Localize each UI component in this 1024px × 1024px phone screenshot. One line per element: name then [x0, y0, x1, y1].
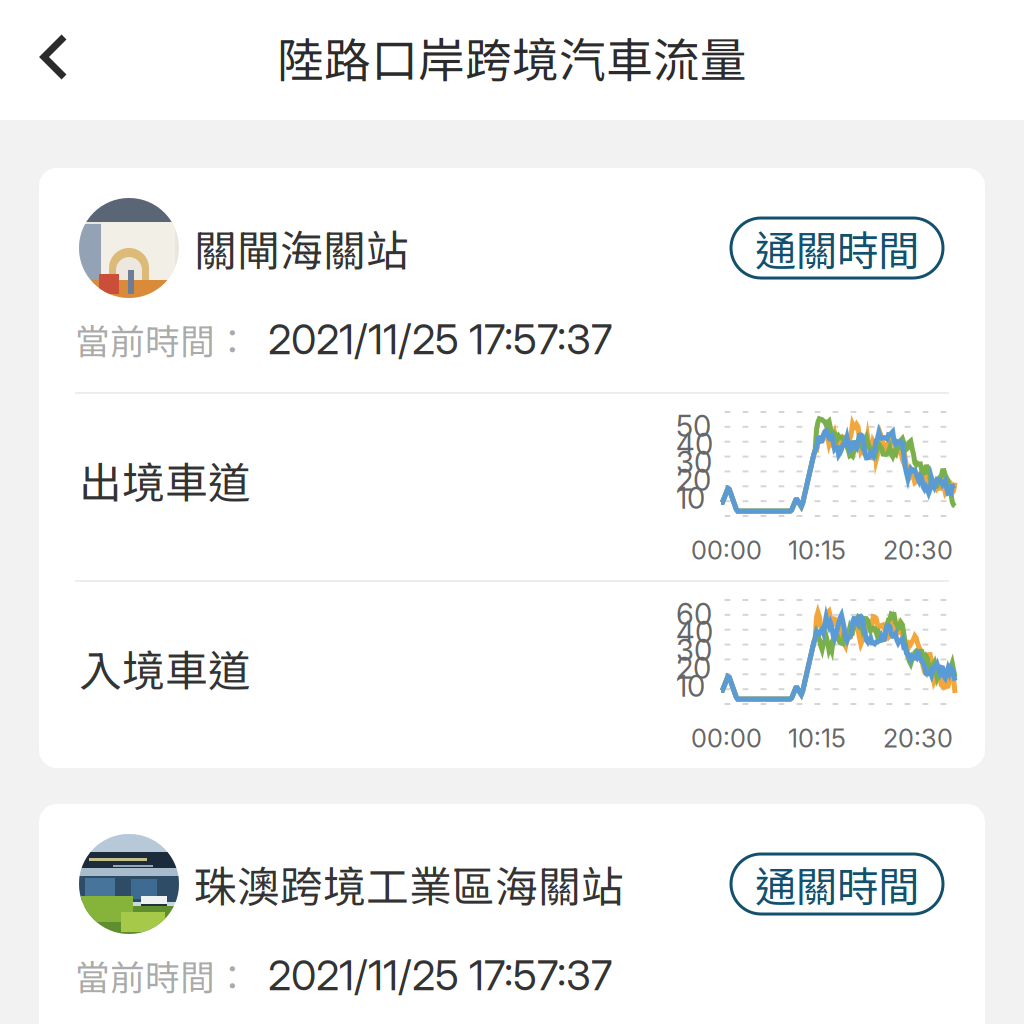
staticText: 2021/11/25 17:57:37 — [268, 314, 612, 364]
staticText: 陸路口岸跨境汽車流量 — [277, 23, 747, 91]
staticText: 10:15 — [788, 723, 846, 754]
staticText: 30 — [676, 632, 712, 668]
staticText: 10:15 — [788, 535, 846, 566]
staticText: 珠澳跨境工業區海關站 — [194, 853, 624, 915]
staticText: 40 — [676, 426, 713, 462]
staticText: 10 — [676, 480, 705, 516]
staticText: 入境車道 — [79, 637, 251, 699]
staticText: 10 — [676, 668, 705, 704]
button[interactable]: 通關時間 — [731, 218, 943, 278]
staticText: 20 — [676, 650, 711, 686]
button[interactable]: 出境車道 — [39, 394, 985, 580]
button[interactable]: 入境車道 — [39, 582, 985, 768]
staticText: 出境車道 — [79, 449, 251, 511]
staticText: 20:30 — [883, 535, 953, 566]
staticText: 關閘海關站 — [194, 217, 409, 279]
staticText: 00:00 — [691, 535, 762, 566]
staticText: 30 — [676, 444, 712, 480]
staticText: 60 — [676, 596, 712, 632]
button[interactable]: 通關時間 — [731, 854, 943, 914]
staticText: 50 — [676, 408, 711, 444]
staticText: 00:00 — [691, 723, 762, 754]
staticText: 當前時間： — [75, 314, 250, 364]
staticText: 2021/11/25 17:57:37 — [268, 950, 612, 1000]
staticText: 20:30 — [883, 723, 953, 754]
staticText: 40 — [676, 614, 713, 650]
staticText: 當前時間： — [75, 950, 250, 1000]
button[interactable]: Back — [16, 19, 92, 95]
staticText: 通關時間 — [755, 854, 919, 914]
staticText: 20 — [676, 462, 711, 498]
staticText: 通關時間 — [755, 218, 919, 278]
